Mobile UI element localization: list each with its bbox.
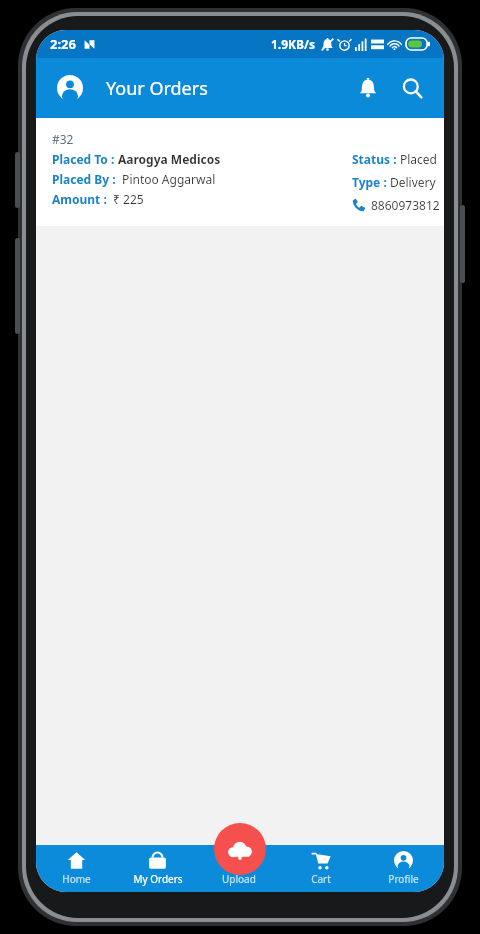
staticText: Amount : [52, 191, 110, 207]
staticText: My Orders [133, 872, 183, 886]
staticText: 2:26 [50, 35, 76, 53]
staticText: 8860973812 [371, 197, 440, 213]
staticText: #32 [52, 131, 74, 147]
button[interactable]: Cart [280, 845, 362, 892]
staticText: 1.9KB/s [271, 36, 316, 52]
button[interactable]: Search [390, 66, 434, 110]
button[interactable]: My Orders [117, 845, 198, 892]
staticText: Type : [352, 174, 390, 190]
staticText: Pintoo Aggarwal [119, 171, 216, 187]
staticText: Upload [222, 872, 256, 886]
staticText: Placed To : [52, 151, 118, 167]
staticText: Aarogya Medicos [118, 151, 221, 167]
staticText: Placed By : [52, 171, 119, 187]
button[interactable]: #32 [36, 118, 444, 226]
staticText: Status : [352, 151, 400, 167]
button[interactable]: Upload [214, 823, 266, 875]
staticText: Placed [400, 151, 437, 167]
button[interactable]: Notifications [346, 66, 390, 110]
button[interactable]: Upload [198, 845, 280, 892]
button[interactable]: Account [50, 68, 90, 108]
button[interactable]: Home [36, 845, 117, 892]
staticText: Cart [311, 872, 331, 886]
staticText: Your Orders [106, 76, 208, 101]
staticText: ₹ 225 [110, 191, 144, 207]
staticText: Home [62, 872, 91, 886]
button[interactable]: Profile [362, 845, 444, 892]
staticText: Delivery [390, 174, 436, 190]
staticText: Profile [388, 872, 419, 886]
